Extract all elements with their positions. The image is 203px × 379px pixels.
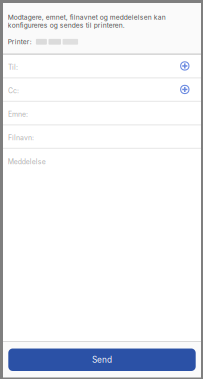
staticText: Cc: (8, 87, 19, 95)
button[interactable]: Emne: (3, 102, 201, 125)
staticText: Filnavn: (8, 134, 34, 142)
staticText: Til: (8, 63, 18, 71)
staticText: Printer: (8, 38, 32, 46)
button[interactable]: Send (8, 348, 196, 371)
staticText: Send (92, 355, 112, 365)
button[interactable]: Filnavn: (3, 125, 201, 149)
staticText: Modtagere, emnet, filnavnet og meddelels… (8, 13, 166, 29)
button[interactable]: Cc: (3, 78, 201, 102)
staticText: Emne: (8, 110, 28, 118)
staticText: Meddelelse (8, 158, 46, 166)
button[interactable]: Til: (3, 55, 201, 78)
